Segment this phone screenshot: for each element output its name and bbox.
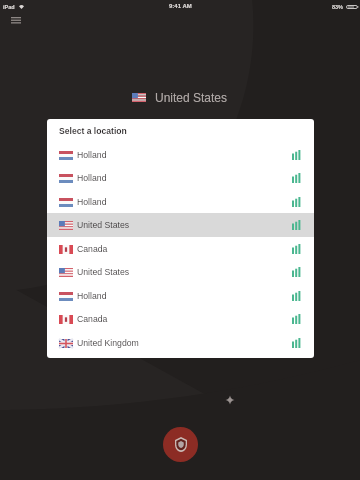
staticText: Holland — [77, 197, 107, 207]
button[interactable]: Holland — [47, 166, 314, 190]
button[interactable]: Holland — [47, 143, 314, 167]
staticText: 83% — [332, 4, 344, 10]
button[interactable]: Connect — [163, 427, 198, 462]
button[interactable]: Canada — [47, 237, 314, 261]
button[interactable]: Canada — [47, 307, 314, 331]
button[interactable]: Holland — [47, 190, 314, 214]
staticText: Select a location — [59, 126, 127, 136]
staticText: iPad — [3, 4, 15, 10]
staticText: Holland — [77, 150, 107, 160]
button[interactable]: Holland — [47, 284, 314, 308]
staticText: 9:41 AM — [169, 3, 192, 10]
staticText: Canada — [77, 244, 108, 254]
staticText: Holland — [77, 291, 107, 301]
staticText: United States — [77, 267, 130, 277]
button[interactable]: United States — [0, 88, 360, 106]
button[interactable]: United States — [47, 260, 314, 284]
staticText: United Kingdom — [77, 338, 139, 348]
button[interactable]: United Kingdom — [47, 331, 314, 355]
staticText: Holland — [77, 173, 107, 183]
staticText: United States — [155, 91, 228, 104]
staticText: United States — [77, 220, 130, 230]
button[interactable]: United States — [47, 213, 314, 237]
staticText: Canada — [77, 314, 108, 324]
button[interactable]: Menu — [5, 12, 27, 29]
